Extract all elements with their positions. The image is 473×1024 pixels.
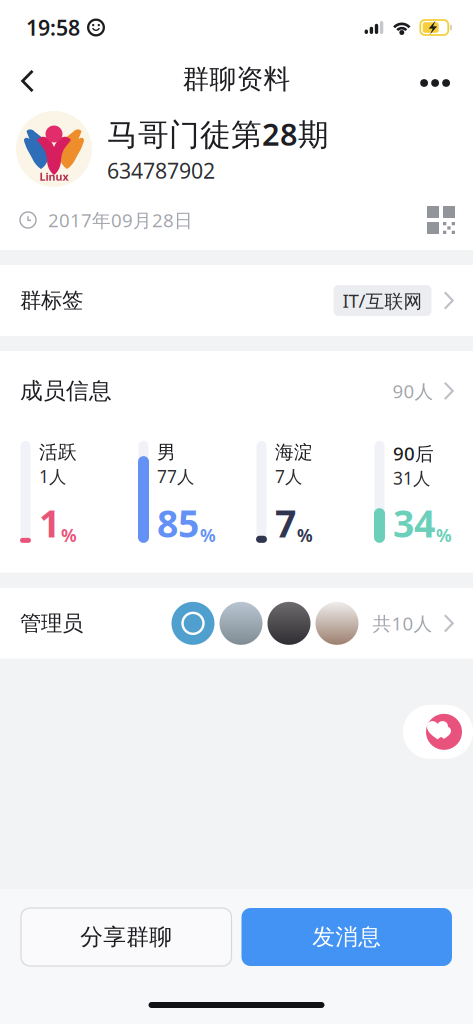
staticText: 77人 bbox=[157, 465, 194, 488]
staticText: 31人 bbox=[393, 467, 430, 490]
staticText: 管理员 bbox=[20, 610, 83, 636]
button[interactable]: 成员信息 bbox=[0, 351, 473, 441]
staticText: 海淀 bbox=[275, 441, 313, 464]
staticText: 634787902 bbox=[107, 156, 215, 184]
staticText: 90人 bbox=[392, 378, 433, 403]
button[interactable]: Group moments bbox=[403, 705, 473, 759]
button[interactable]: Back bbox=[11, 50, 50, 101]
staticText: IT/互联网 bbox=[342, 288, 422, 313]
staticText: 7 bbox=[275, 498, 296, 548]
staticText: 群标签 bbox=[20, 287, 83, 314]
staticText: 1 bbox=[39, 498, 60, 548]
staticText: % bbox=[297, 524, 313, 547]
staticText: Linux bbox=[39, 169, 68, 184]
button[interactable]: Group QR code bbox=[422, 201, 460, 239]
button[interactable]: 分享群聊 bbox=[21, 908, 231, 966]
staticText: 85 bbox=[157, 498, 199, 548]
staticText: 共10人 bbox=[372, 611, 432, 636]
button[interactable]: More bbox=[404, 50, 462, 102]
staticText: 发消息 bbox=[312, 923, 381, 951]
button[interactable]: 发消息 bbox=[241, 908, 452, 966]
staticText: 成员信息 bbox=[20, 377, 112, 405]
staticText: 群聊资料 bbox=[182, 63, 290, 95]
staticText: 1人 bbox=[39, 465, 66, 488]
staticText: 19:58 bbox=[26, 13, 80, 42]
staticText: 90后 bbox=[393, 441, 434, 466]
staticText: 7人 bbox=[275, 465, 302, 488]
staticText: % bbox=[436, 524, 452, 547]
staticText: 34 bbox=[393, 498, 435, 548]
staticText: % bbox=[61, 524, 77, 547]
button[interactable]: 管理员 bbox=[0, 588, 473, 659]
staticText: % bbox=[200, 524, 216, 547]
button[interactable]: 群标签 bbox=[0, 265, 473, 336]
staticText: 男 bbox=[157, 441, 176, 464]
staticText: 2017年09月28日 bbox=[48, 208, 193, 232]
staticText: 马哥门徒第28期 bbox=[107, 113, 329, 154]
staticText: 分享群聊 bbox=[80, 923, 172, 951]
staticText: 活跃 bbox=[39, 441, 77, 464]
